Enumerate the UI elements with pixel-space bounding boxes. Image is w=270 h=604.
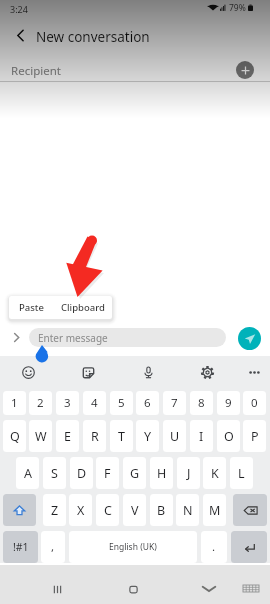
button[interactable]: 2 xyxy=(29,391,52,415)
staticText: 8 xyxy=(198,395,205,411)
staticText: E xyxy=(64,428,71,445)
button[interactable]: Emoji xyxy=(18,362,38,382)
staticText: . xyxy=(212,539,216,555)
staticText: F xyxy=(104,465,111,482)
staticText: N xyxy=(183,502,193,519)
staticText: Z xyxy=(51,502,59,519)
button[interactable]: W xyxy=(29,420,52,452)
button[interactable]: Clipboard xyxy=(53,296,112,319)
staticText: W xyxy=(35,428,47,445)
button[interactable]: F xyxy=(96,457,119,489)
button[interactable]: 6 xyxy=(136,391,159,415)
staticText: O xyxy=(224,428,234,445)
button[interactable]: Send xyxy=(238,327,261,350)
staticText: Recipient xyxy=(11,63,61,79)
button[interactable]: J xyxy=(177,457,200,489)
button[interactable]: L xyxy=(230,457,253,489)
button[interactable]: 5 xyxy=(110,391,133,415)
staticText: 9 xyxy=(225,395,232,411)
button[interactable]: R xyxy=(83,420,106,452)
button[interactable]: 3 xyxy=(56,391,79,415)
staticText: 4 xyxy=(91,395,98,411)
button[interactable]: Voice input xyxy=(138,362,158,382)
button[interactable]: Show more xyxy=(6,327,26,347)
staticText: U xyxy=(170,428,180,445)
button[interactable]: Shift xyxy=(3,494,36,526)
staticText: K xyxy=(211,465,219,482)
button[interactable]: Q xyxy=(3,420,26,452)
button[interactable]: English (UK) xyxy=(69,531,197,563)
staticText: New conversation xyxy=(36,28,150,46)
button[interactable]: G xyxy=(123,457,146,489)
button[interactable]: O xyxy=(217,420,240,452)
staticText: J xyxy=(187,465,191,482)
button[interactable]: 7 xyxy=(163,391,186,415)
button[interactable]: C xyxy=(96,494,119,526)
staticText: R xyxy=(91,428,99,445)
staticText: X xyxy=(77,502,85,519)
button[interactable]: B xyxy=(150,494,173,526)
staticText: 0 xyxy=(251,395,258,411)
staticText: 6 xyxy=(144,395,151,411)
button[interactable]: Change keyboard xyxy=(239,577,262,600)
button[interactable]: U xyxy=(163,420,186,452)
button[interactable]: T xyxy=(110,420,133,452)
staticText: 2 xyxy=(37,395,44,411)
button[interactable]: Back xyxy=(6,21,34,49)
button[interactable]: H xyxy=(150,457,173,489)
button[interactable]: Enter xyxy=(231,531,267,563)
button[interactable]: X xyxy=(69,494,92,526)
button[interactable]: S xyxy=(43,457,66,489)
button[interactable]: 9 xyxy=(217,391,240,415)
staticText: 3:24 xyxy=(10,3,28,15)
button[interactable]: Keyboard settings xyxy=(197,362,217,382)
staticText: I xyxy=(199,428,204,445)
button[interactable]: Paste xyxy=(9,296,53,319)
button[interactable]: . xyxy=(201,531,227,563)
staticText: A xyxy=(24,465,32,482)
staticText: Enter message xyxy=(38,331,108,345)
staticText: 5 xyxy=(118,395,125,411)
staticText: 3 xyxy=(64,395,71,411)
button[interactable]: D xyxy=(70,457,93,489)
button[interactable]: !#1 xyxy=(3,531,38,563)
button[interactable]: P xyxy=(243,420,266,452)
button[interactable]: 8 xyxy=(190,391,213,415)
staticText: V xyxy=(131,502,139,519)
staticText: M xyxy=(209,502,221,519)
button[interactable]: V xyxy=(123,494,146,526)
button[interactable]: Add recipient xyxy=(236,61,254,79)
button[interactable]: 0 xyxy=(243,391,266,415)
staticText: Paste xyxy=(19,301,44,314)
staticText: !#1 xyxy=(13,540,29,554)
staticText: 79% xyxy=(229,2,246,14)
button[interactable]: I xyxy=(190,420,213,452)
staticText: C xyxy=(104,502,112,519)
button[interactable]: 4 xyxy=(83,391,106,415)
staticText: P xyxy=(251,428,259,445)
staticText: L xyxy=(238,465,245,482)
button[interactable]: K xyxy=(203,457,226,489)
button[interactable]: Recent apps xyxy=(46,578,68,600)
staticText: G xyxy=(130,465,140,482)
button[interactable]: Y xyxy=(136,420,159,452)
staticText: S xyxy=(51,465,58,482)
button[interactable]: More options xyxy=(244,362,264,382)
staticText: , xyxy=(51,539,55,555)
button[interactable]: Backspace xyxy=(233,494,267,526)
button[interactable]: Home xyxy=(122,578,144,600)
button[interactable]: M xyxy=(203,494,226,526)
button[interactable]: N xyxy=(176,494,199,526)
button[interactable]: E xyxy=(56,420,79,452)
button[interactable]: Hide keyboard xyxy=(197,577,220,600)
staticText: 7 xyxy=(171,395,178,411)
staticText: Q xyxy=(10,428,20,445)
button[interactable]: 1 xyxy=(3,391,26,415)
button[interactable]: Stickers xyxy=(78,362,98,382)
staticText: D xyxy=(77,465,87,482)
button[interactable]: Recipient xyxy=(0,58,270,84)
button[interactable]: Z xyxy=(43,494,66,526)
button[interactable]: A xyxy=(16,457,39,489)
button[interactable]: , xyxy=(41,531,65,563)
button[interactable]: Enter message xyxy=(29,328,226,347)
